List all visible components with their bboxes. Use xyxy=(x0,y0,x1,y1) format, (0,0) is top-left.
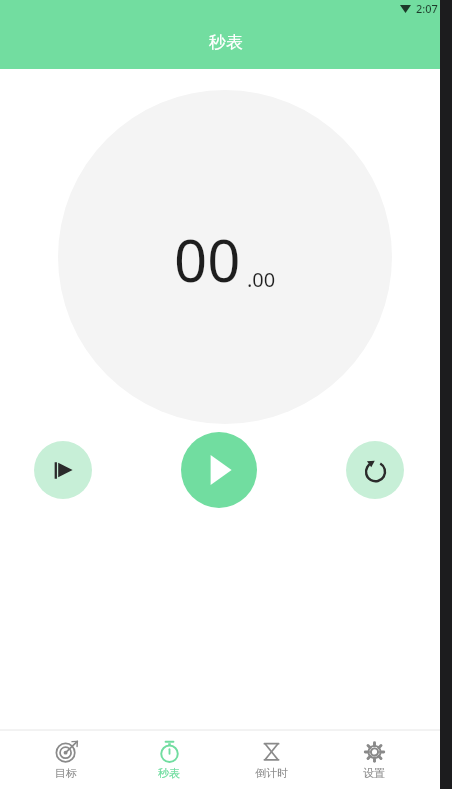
staticText: 2:07 xyxy=(416,1,438,16)
staticText: 00 xyxy=(174,220,241,299)
button[interactable]: Start xyxy=(181,432,257,508)
button[interactable]: 设置 xyxy=(338,730,410,789)
staticText: 倒计时 xyxy=(255,766,288,780)
button[interactable]: 秒表 xyxy=(133,730,205,789)
staticText: .00 xyxy=(247,266,276,293)
staticText: 秒表 xyxy=(158,766,180,780)
staticText: 秒表 xyxy=(209,32,243,53)
staticText: 设置 xyxy=(363,766,385,780)
button[interactable]: Lap xyxy=(34,441,92,499)
button[interactable]: 倒计时 xyxy=(235,730,307,789)
staticText: 目标 xyxy=(55,766,77,780)
button[interactable]: Reset xyxy=(346,441,404,499)
button[interactable]: 目标 xyxy=(30,730,102,789)
